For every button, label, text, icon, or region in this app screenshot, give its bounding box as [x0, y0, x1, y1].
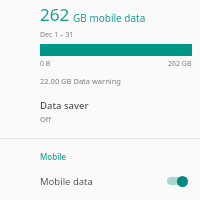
button[interactable]: Data saver	[0, 98, 200, 130]
staticText: 22.00 GB Data warning	[40, 76, 121, 86]
button[interactable]: Mobile data	[0, 172, 200, 190]
staticText: Mobile	[40, 151, 67, 162]
staticText: 262 GB	[168, 59, 192, 69]
staticText: GB mobile data	[73, 11, 146, 25]
staticText: Off	[40, 114, 52, 124]
staticText: Dec 1 – 31	[40, 30, 74, 40]
button[interactable]: Mobile data toggle	[166, 174, 188, 188]
staticText: Mobile data	[40, 175, 93, 188]
staticText: 0 B	[40, 59, 51, 69]
staticText: 262	[40, 3, 70, 26]
staticText: Data saver	[40, 99, 89, 112]
